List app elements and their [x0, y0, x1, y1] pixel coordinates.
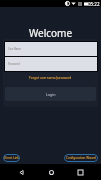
- button[interactable]: Configuration Wizard: [64, 154, 98, 162]
- button[interactable]: Password: [5, 57, 97, 71]
- staticText: Configuration Wizard: [66, 156, 96, 160]
- staticText: 05:22: [88, 1, 100, 7]
- button[interactable]: Home: [43, 164, 59, 180]
- staticText: UserName: [8, 47, 21, 51]
- staticText: Login: [46, 92, 56, 97]
- button[interactable]: Recents: [72, 164, 88, 180]
- button[interactable]: Back: [13, 164, 29, 180]
- button[interactable]: UserName: [5, 42, 97, 56]
- button[interactable]: Forgot username/password: [29, 76, 72, 80]
- staticText: Direct Link: [4, 156, 19, 160]
- button[interactable]: Direct Link: [3, 154, 20, 162]
- button[interactable]: Login: [5, 87, 96, 101]
- staticText: Password: [8, 62, 20, 66]
- staticText: Welcome: [0, 26, 101, 40]
